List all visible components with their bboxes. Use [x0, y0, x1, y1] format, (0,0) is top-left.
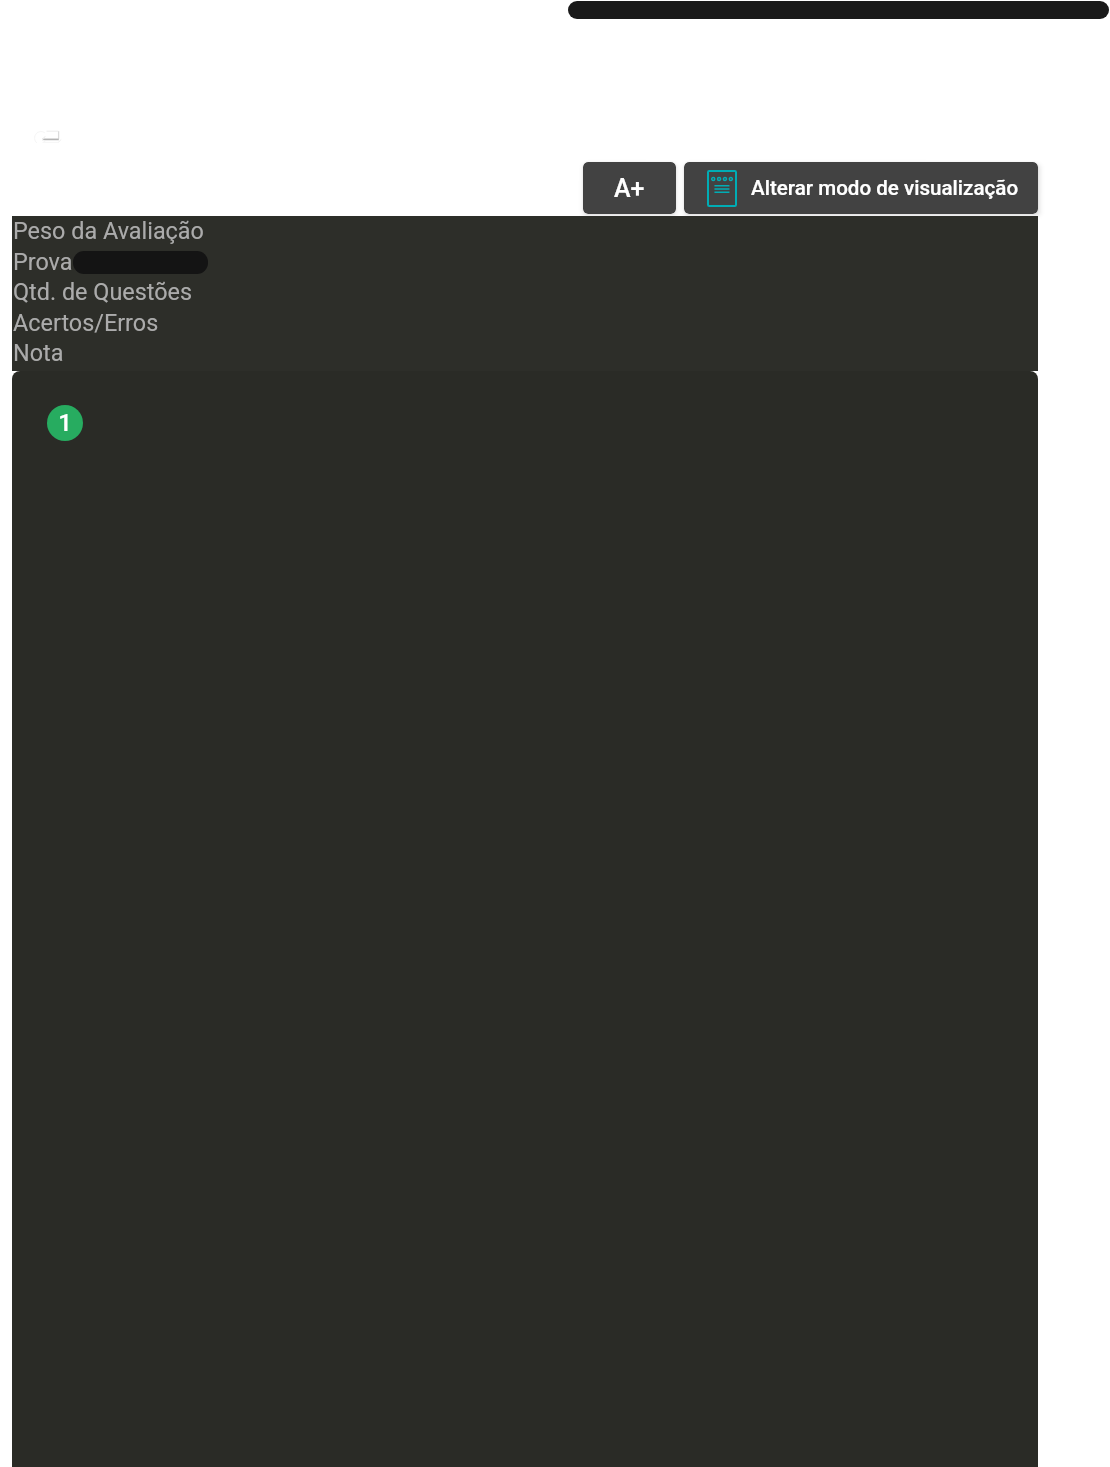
- staticText: Peso da Avaliação: [13, 215, 204, 245]
- button[interactable]: Voltar: [25, 118, 75, 158]
- staticText: Prova: [13, 246, 73, 276]
- staticText: 1: [58, 409, 72, 437]
- staticText: Acertos/Erros: [13, 307, 159, 337]
- button[interactable]: 1: [47, 405, 83, 441]
- staticText: Alterar modo de visualização: [751, 176, 1019, 200]
- staticText: A+: [614, 174, 645, 203]
- button[interactable]: A+: [583, 162, 676, 214]
- button[interactable]: Alterar modo de visualização: [684, 162, 1038, 214]
- staticText: Nota: [13, 337, 64, 367]
- staticText: Qtd. de Questões: [13, 276, 193, 306]
